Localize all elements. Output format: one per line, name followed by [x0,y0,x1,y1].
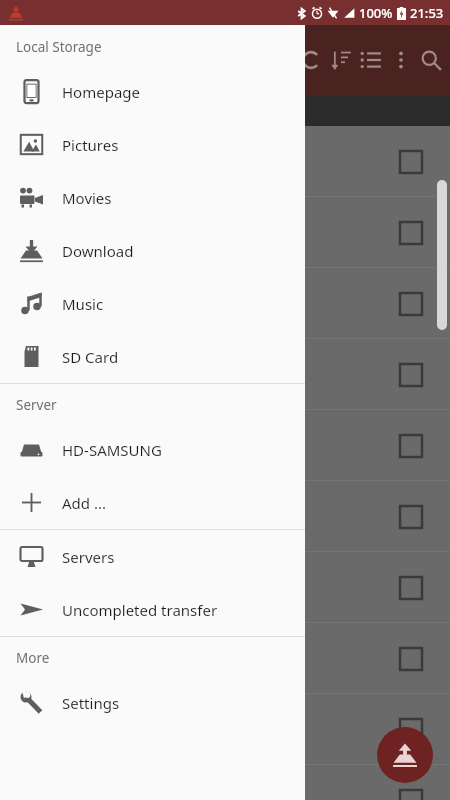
staticText: Add ... [62,493,106,513]
button[interactable]: Sort [326,40,356,80]
button[interactable]: Upload [377,727,433,783]
button[interactable]: List view [356,40,386,80]
button[interactable]: SD Card [0,330,305,383]
staticText: Servers [62,547,115,567]
button[interactable] [0,552,450,623]
button[interactable]: Settings [0,676,305,729]
staticText: SD Card [62,347,119,367]
staticText: More [16,649,50,667]
button[interactable]: Homepage [0,65,305,118]
button[interactable]: Add ... [0,476,305,529]
staticText: 100% [359,4,393,22]
staticText: HD-SAMSUNG [62,440,162,460]
button[interactable]: HD-SAMSUNG [0,423,305,476]
button[interactable] [0,623,450,694]
button[interactable] [0,268,450,339]
staticText: 21:53 [410,4,444,22]
button[interactable]: Movies [0,171,305,224]
button[interactable]: Download [0,224,305,277]
staticText: Local Storage [16,38,102,56]
button[interactable]: Uncompleted transfer [0,583,305,636]
staticText: Download [62,241,134,261]
staticText: Movies [62,188,112,208]
button[interactable] [0,481,450,552]
staticText: Pictures [62,135,119,155]
button[interactable] [0,126,450,197]
staticText: Uncompleted transfer [62,600,218,620]
staticText: Music [62,294,104,314]
button[interactable]: Servers [0,530,305,583]
staticText: Homepage [62,82,141,102]
button[interactable]: Music [0,277,305,330]
button[interactable] [0,694,450,765]
button[interactable] [0,197,450,268]
button[interactable]: Refresh [296,40,326,80]
button[interactable]: More options [386,40,416,80]
button[interactable]: Search [416,40,446,80]
staticText: Server [16,396,57,414]
button[interactable] [0,339,450,410]
button[interactable] [0,765,450,800]
staticText: Settings [62,693,120,713]
button[interactable] [0,410,450,481]
button[interactable]: Pictures [0,118,305,171]
